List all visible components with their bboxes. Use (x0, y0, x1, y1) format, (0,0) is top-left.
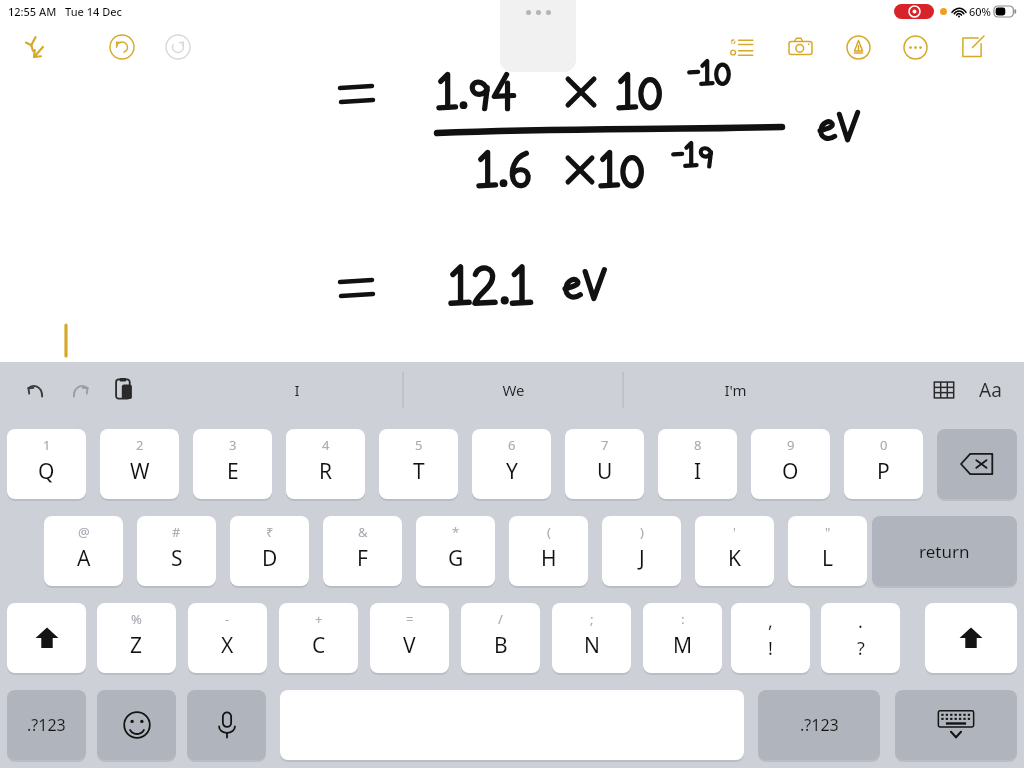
button[interactable]: 9 (751, 429, 830, 499)
button[interactable]: Dictate (187, 690, 266, 760)
button[interactable]: Markup (839, 28, 877, 66)
staticText: 6 (508, 436, 516, 454)
staticText: ; (590, 610, 594, 628)
button[interactable]: : (643, 603, 722, 673)
staticText: X (221, 631, 234, 660)
button[interactable]: Redo (64, 374, 96, 406)
staticText: G (448, 544, 464, 573)
staticText: E (227, 457, 239, 486)
staticText: J (639, 544, 645, 573)
button[interactable]: .?123 (7, 690, 86, 760)
staticText: B (494, 631, 508, 660)
staticText: Y (506, 457, 518, 486)
staticText: I (694, 457, 702, 486)
button[interactable]: More (896, 28, 934, 66)
button[interactable]: Undo (20, 374, 52, 406)
button[interactable]: ) (602, 516, 681, 586)
staticText: 60% (969, 4, 991, 19)
button[interactable]: ₹ (230, 516, 309, 586)
button[interactable]: + (279, 603, 358, 673)
staticText: 5 (415, 436, 423, 454)
button[interactable]: 1 (7, 429, 86, 499)
button[interactable]: " (788, 516, 867, 586)
button[interactable]: return (872, 516, 1017, 586)
button[interactable]: Shift (925, 603, 1017, 673)
staticText: .?123 (27, 714, 66, 736)
staticText: ₹ (266, 523, 274, 541)
staticText: % (131, 610, 142, 628)
button[interactable]: , (731, 603, 810, 673)
button[interactable]: ' (695, 516, 774, 586)
button[interactable]: 5 (379, 429, 458, 499)
staticText: Aa (979, 377, 1002, 403)
staticText: : (681, 610, 685, 628)
button[interactable]: Undo (103, 28, 141, 66)
staticText: T (413, 457, 425, 486)
staticText: F (357, 544, 368, 573)
button[interactable]: / (461, 603, 540, 673)
button[interactable]: Hide keyboard (895, 690, 1017, 760)
staticText: O (782, 457, 799, 486)
staticText: U (597, 457, 613, 486)
button[interactable]: 6 (472, 429, 551, 499)
button[interactable]: ( (509, 516, 588, 586)
staticText: 1 (43, 436, 51, 454)
button[interactable]: We (403, 362, 623, 418)
button[interactable]: @ (44, 516, 123, 586)
staticText: K (728, 544, 741, 573)
staticText: L (822, 544, 834, 573)
button[interactable]: Multitasking controls (500, 0, 576, 72)
staticText: We (502, 380, 525, 400)
button[interactable]: 2 (100, 429, 179, 499)
button[interactable]: I'm (623, 362, 848, 418)
button[interactable]: Collapse (14, 28, 52, 66)
button[interactable]: I (190, 362, 403, 418)
button[interactable]: * (416, 516, 495, 586)
staticText: 0 (880, 436, 888, 454)
staticText: I (294, 380, 300, 400)
staticText: 4 (322, 436, 330, 454)
button[interactable]: .?123 (758, 690, 880, 760)
staticText: M (673, 631, 693, 660)
staticText: A (77, 544, 91, 573)
staticText: , (768, 609, 773, 634)
staticText: 9 (787, 436, 795, 454)
button[interactable]: % (97, 603, 176, 673)
staticText: Tue 14 Dec (65, 4, 122, 19)
staticText: .?123 (800, 714, 839, 736)
staticText: 7 (601, 436, 609, 454)
staticText: * (452, 523, 460, 541)
button[interactable]: 0 (844, 429, 923, 499)
staticText: H (541, 544, 557, 573)
button[interactable]: Shift (7, 603, 86, 673)
staticText: R (319, 457, 333, 486)
staticText: = (406, 610, 414, 628)
button[interactable]: . (821, 603, 900, 673)
staticText: " (825, 523, 831, 541)
staticText: 8 (694, 436, 702, 454)
button[interactable]: Checklist (723, 28, 761, 66)
button[interactable]: 4 (286, 429, 365, 499)
button[interactable]: - (188, 603, 267, 673)
button[interactable]: Camera (781, 28, 819, 66)
button[interactable]: ; (552, 603, 631, 673)
button[interactable]: # (137, 516, 216, 586)
button[interactable]: Redo (159, 28, 197, 66)
button[interactable]: Compose (953, 28, 991, 66)
button[interactable]: 8 (658, 429, 737, 499)
button[interactable]: 7 (565, 429, 644, 499)
button[interactable]: Paste (108, 373, 140, 405)
staticText: . (858, 609, 863, 634)
button[interactable]: Emoji (97, 690, 176, 760)
button[interactable]: = (370, 603, 449, 673)
staticText: S (171, 544, 183, 573)
button[interactable]: Backspace (937, 429, 1017, 499)
button[interactable]: Insert table (928, 374, 960, 406)
button[interactable]: Aa (972, 372, 1008, 408)
staticText: C (312, 631, 326, 660)
staticText: I'm (724, 380, 747, 400)
button[interactable]: 3 (193, 429, 272, 499)
staticText: P (877, 457, 890, 486)
button[interactable]: & (323, 516, 402, 586)
